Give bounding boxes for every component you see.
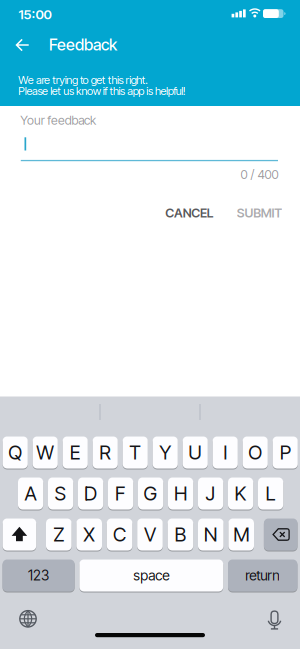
staticText: Y <box>159 441 171 464</box>
button[interactable]: T <box>123 436 148 468</box>
button[interactable]: Your feedback <box>20 110 278 163</box>
button[interactable]: H <box>168 477 193 509</box>
button[interactable]: U <box>183 436 208 468</box>
button[interactable]: C <box>107 518 132 550</box>
button[interactable]: W <box>33 436 58 468</box>
staticText: Feedback <box>49 35 117 54</box>
staticText: M <box>233 523 249 546</box>
staticText: Z <box>53 523 64 546</box>
staticText: CANCEL <box>165 205 214 221</box>
button[interactable]: L <box>258 477 283 509</box>
staticText: We are trying to get this right. <box>18 73 148 87</box>
staticText: F <box>115 482 126 505</box>
staticText: I <box>223 441 227 464</box>
staticText: X <box>83 523 95 546</box>
button[interactable]: D <box>78 477 103 509</box>
staticText: space <box>133 567 169 584</box>
button[interactable]: F <box>108 477 133 509</box>
staticText: W <box>36 441 54 464</box>
button[interactable]: S <box>48 477 73 509</box>
button[interactable]: N <box>198 518 224 550</box>
staticText: 0 / 400 <box>240 167 278 182</box>
staticText: B <box>174 523 186 546</box>
button[interactable]: R <box>93 436 118 468</box>
button[interactable]: Delete <box>264 518 297 550</box>
button[interactable]: P <box>273 436 298 468</box>
staticText: S <box>55 482 67 505</box>
button[interactable]: I <box>213 436 238 468</box>
button[interactable]: K <box>228 477 253 509</box>
button[interactable]: Z <box>46 518 72 550</box>
staticText: L <box>266 482 276 505</box>
button[interactable]: CANCEL <box>157 197 222 229</box>
staticText: T <box>129 441 141 464</box>
staticText: R <box>99 441 111 464</box>
button[interactable]: B <box>168 518 193 550</box>
staticText: Q <box>8 441 22 464</box>
button[interactable]: Dictation <box>259 605 289 635</box>
button[interactable]: E <box>63 436 88 468</box>
button[interactable]: Y <box>153 436 178 468</box>
staticText: N <box>204 523 218 546</box>
staticText: SUBMIT <box>237 205 282 221</box>
staticText: U <box>188 441 202 464</box>
button[interactable]: Back <box>5 29 39 61</box>
staticText: P <box>280 441 291 464</box>
button[interactable]: G <box>138 477 163 509</box>
button[interactable]: return <box>228 559 297 591</box>
staticText: E <box>70 441 81 464</box>
staticText: 15:00 <box>18 6 51 22</box>
button[interactable]: O <box>243 436 268 468</box>
button[interactable]: space <box>79 559 223 591</box>
button[interactable]: SUBMIT <box>229 197 290 229</box>
staticText: Please let us know if this app is helpfu… <box>18 84 186 98</box>
button[interactable]: A <box>18 477 43 509</box>
staticText: A <box>25 482 37 505</box>
button[interactable]: J <box>198 477 223 509</box>
staticText: D <box>84 482 97 505</box>
staticText: V <box>144 523 156 546</box>
button[interactable]: V <box>137 518 163 550</box>
button[interactable]: Shift <box>3 518 36 550</box>
staticText: K <box>235 482 247 505</box>
button[interactable]: X <box>76 518 102 550</box>
staticText: Your feedback <box>20 113 96 128</box>
button[interactable]: Next keyboard <box>13 604 43 634</box>
button[interactable]: 123 <box>3 559 75 591</box>
staticText: H <box>174 482 187 505</box>
button[interactable]: M <box>228 518 254 550</box>
staticText: O <box>248 441 262 464</box>
staticText: J <box>206 482 216 505</box>
staticText: return <box>245 567 280 584</box>
button[interactable]: Q <box>3 436 28 468</box>
staticText: C <box>113 523 126 546</box>
staticText: 123 <box>28 567 49 584</box>
staticText: G <box>144 482 158 505</box>
